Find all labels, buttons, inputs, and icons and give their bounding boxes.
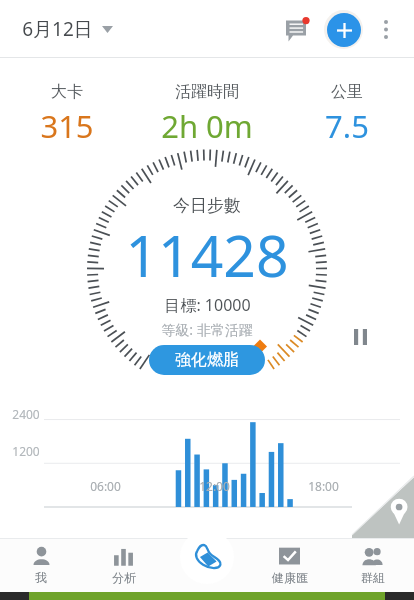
staticText: 我 bbox=[35, 570, 47, 585]
staticText: 分析 bbox=[112, 570, 136, 585]
staticText: 1200 bbox=[12, 443, 40, 459]
button[interactable]: Messages bbox=[276, 7, 320, 51]
button[interactable]: More options bbox=[366, 9, 406, 49]
button[interactable]: Steps bbox=[180, 530, 234, 584]
staticText: 強化燃脂 bbox=[175, 350, 239, 370]
button[interactable]: 大卡 bbox=[0, 82, 133, 147]
button[interactable]: 分析 bbox=[82, 538, 165, 592]
button[interactable]: 公里 bbox=[280, 82, 414, 147]
button[interactable]: 強化燃脂 bbox=[149, 345, 265, 375]
staticText: 2400 bbox=[12, 406, 40, 422]
staticText: 等級: 非常活躍 bbox=[161, 320, 253, 339]
staticText: 公里 bbox=[331, 82, 363, 102]
button[interactable]: 健康匯 bbox=[248, 538, 331, 592]
staticText: 12:00 bbox=[199, 478, 230, 494]
button[interactable]: Add bbox=[320, 6, 366, 52]
staticText: 大卡 bbox=[51, 82, 83, 102]
staticText: 2h 0m bbox=[161, 105, 253, 147]
button[interactable]: 群組 bbox=[331, 538, 414, 592]
button[interactable]: Map bbox=[352, 476, 414, 538]
button[interactable]: Pause bbox=[342, 319, 378, 355]
staticText: 18:00 bbox=[308, 478, 339, 494]
staticText: 群組 bbox=[361, 570, 385, 585]
staticText: 315 bbox=[40, 105, 94, 147]
button[interactable]: Steps bbox=[165, 538, 248, 592]
staticText: 6月12日 bbox=[22, 16, 93, 42]
button[interactable]: 6月12日 bbox=[16, 10, 119, 48]
staticText: 7.5 bbox=[325, 105, 369, 147]
button[interactable]: 活躍時間 bbox=[133, 82, 280, 147]
button[interactable]: 我 bbox=[0, 538, 82, 592]
staticText: 06:00 bbox=[90, 478, 121, 494]
staticText: 健康匯 bbox=[272, 570, 308, 585]
staticText: 11428 bbox=[125, 216, 289, 294]
staticText: 目標: 10000 bbox=[164, 294, 251, 316]
staticText: 活躍時間 bbox=[175, 82, 239, 102]
staticText: 今日步數 bbox=[173, 195, 241, 216]
